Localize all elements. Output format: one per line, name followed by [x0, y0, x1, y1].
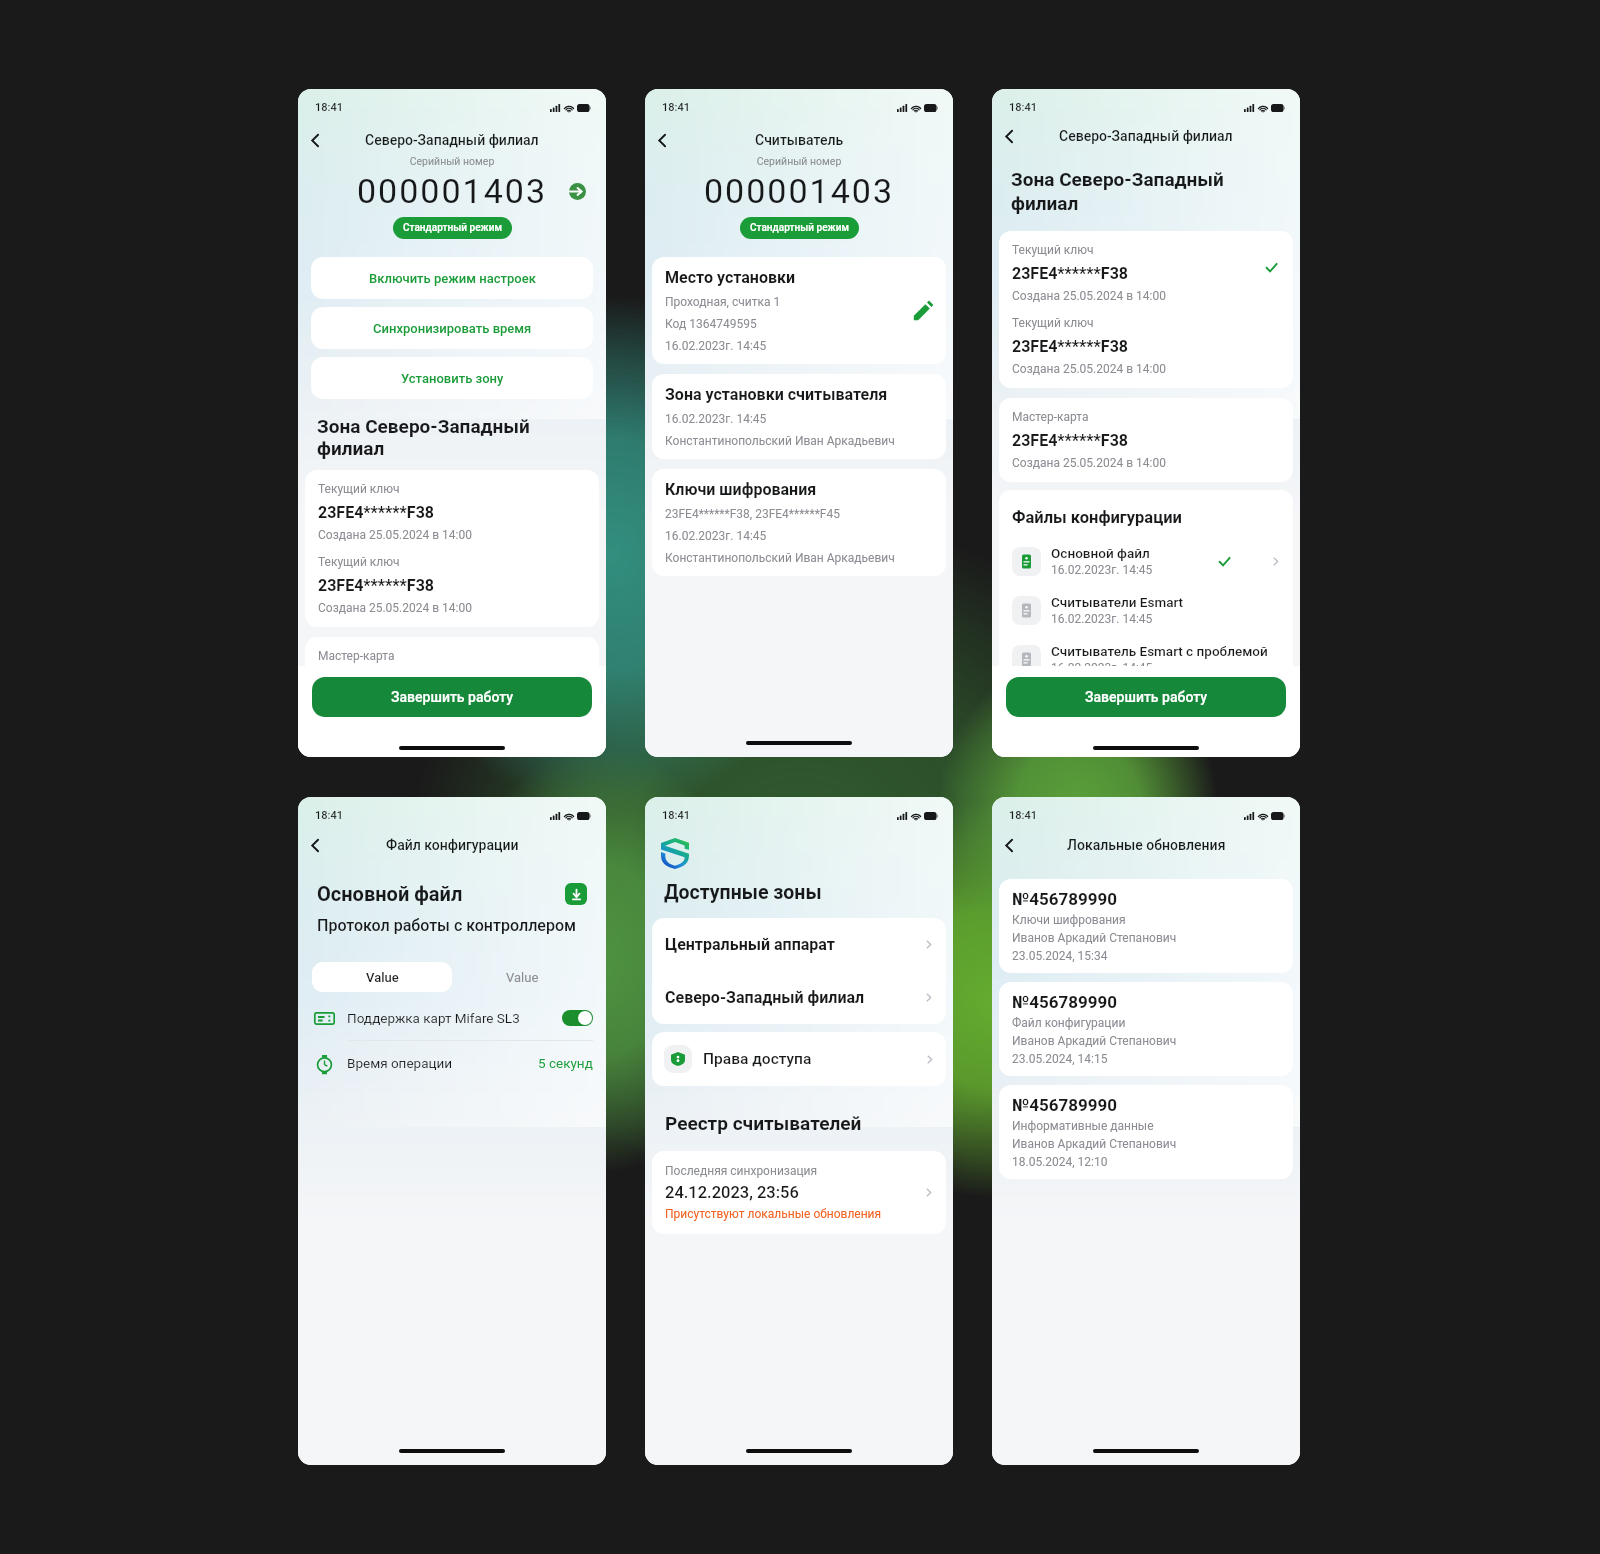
- staticText: 23FE4******F38: [1012, 337, 1128, 356]
- staticText: Мастер-карта: [318, 649, 395, 663]
- staticText: Проходная, считка 1: [665, 295, 781, 309]
- staticText: Доступные зоны: [664, 881, 822, 904]
- button[interactable]: Завершить работу: [1006, 677, 1286, 717]
- button[interactable]: Back: [997, 124, 1021, 148]
- staticText: №456789990: [1012, 1095, 1118, 1115]
- staticText: Синхронизировать время: [373, 321, 532, 336]
- button[interactable]: Value: [452, 962, 593, 992]
- staticText: 16.02.2023г. 14:45: [1051, 612, 1153, 626]
- staticText: Считыватель Esmart с проблемой: [1051, 643, 1268, 659]
- button[interactable]: Место установки: [652, 257, 946, 364]
- staticText: 23FE4******F38: [1012, 264, 1128, 283]
- staticText: Текущий ключ: [318, 482, 400, 496]
- staticText: Серийный номер: [645, 155, 953, 167]
- staticText: Время операции: [347, 1055, 538, 1071]
- staticText: 000001403: [298, 171, 606, 211]
- staticText: 5 секунд: [538, 1055, 593, 1071]
- button[interactable]: Синхронизировать время: [311, 307, 593, 349]
- staticText: Value: [506, 970, 539, 985]
- button[interactable]: Зона установки считывателя: [652, 374, 946, 459]
- staticText: Иванов Аркадий Степанович: [1012, 1034, 1177, 1048]
- staticText: Файл конфигурации: [386, 837, 519, 853]
- staticText: Создана 25.05.2024 в 14:00: [318, 601, 472, 615]
- staticText: Создана 25.05.2024 в 14:00: [318, 695, 472, 709]
- staticText: Зона установки считывателя: [665, 385, 888, 404]
- staticText: 24.12.2023, 23:56: [665, 1183, 799, 1202]
- staticText: 16.02.2023г. 14:45: [665, 412, 767, 426]
- button[interactable]: Последняя синхронизация: [652, 1151, 946, 1234]
- staticText: Северо-Западный филиал: [365, 132, 539, 148]
- staticText: Иванов Аркадий Степанович: [1012, 931, 1177, 945]
- button[interactable]: Мастер-карта: [999, 398, 1293, 482]
- button[interactable]: Северо-Западный филиал: [652, 971, 946, 1024]
- staticText: Value: [366, 970, 399, 985]
- staticText: Считыватель: [755, 132, 844, 148]
- staticText: Создана 25.05.2024 в 14:00: [318, 528, 472, 542]
- button[interactable]: Центральный аппарат: [652, 918, 946, 971]
- button[interactable]: Время операции: [314, 1051, 593, 1075]
- staticText: Стандартный режим: [750, 222, 849, 234]
- button[interactable]: Права доступа: [652, 1032, 946, 1086]
- staticText: Текущий ключ: [1012, 243, 1094, 257]
- button[interactable]: Считыватель Esmart с проблемой: [1012, 643, 1280, 675]
- button[interactable]: Стандартный режим: [740, 217, 859, 239]
- staticText: Код 1364749595: [665, 317, 757, 331]
- staticText: 18:41: [315, 101, 343, 114]
- staticText: Реестр считывателей: [665, 1112, 862, 1134]
- button[interactable]: Download: [565, 883, 587, 905]
- staticText: Файл конфигурации: [1012, 1016, 1126, 1030]
- button[interactable]: Back: [650, 128, 674, 152]
- button[interactable]: №456789990: [999, 1085, 1293, 1179]
- staticText: Включить режим настроек: [369, 271, 536, 286]
- staticText: Основной файл: [317, 882, 565, 905]
- button[interactable]: №456789990: [999, 879, 1293, 973]
- button[interactable]: Завершить работу: [312, 677, 592, 717]
- staticText: Зона Северо-Западный филиал: [1011, 168, 1224, 215]
- button[interactable]: Open: [569, 183, 586, 200]
- staticText: Зона Северо-Западный филиал: [317, 415, 530, 460]
- staticText: Права доступа: [703, 1050, 925, 1068]
- button[interactable]: Edit: [913, 301, 933, 321]
- staticText: Текущий ключ: [318, 555, 400, 569]
- button[interactable]: Считыватели Esmart: [1012, 594, 1280, 626]
- staticText: 18:41: [315, 809, 343, 822]
- button[interactable]: Текущий ключ: [305, 470, 599, 627]
- staticText: 18:41: [1009, 809, 1037, 822]
- staticText: Информативные данные: [1012, 1119, 1154, 1133]
- button[interactable]: Value: [312, 962, 452, 992]
- staticText: 18:41: [662, 101, 690, 114]
- button[interactable]: Back: [303, 833, 327, 857]
- staticText: Константинопольский Иван Аркадьевич: [665, 434, 895, 448]
- staticText: 18.05.2024, 12:10: [1012, 1155, 1108, 1169]
- staticText: №456789990: [1012, 992, 1118, 1012]
- staticText: 18:41: [1009, 101, 1037, 114]
- button[interactable]: Back: [303, 128, 327, 152]
- button[interactable]: Включить режим настроек: [311, 257, 593, 299]
- staticText: 16.02.2023г. 14:45: [665, 529, 767, 543]
- staticText: Мастер-карта: [1012, 410, 1089, 424]
- button[interactable]: Стандартный режим: [393, 217, 512, 239]
- staticText: Протокол работы с контроллером: [317, 916, 577, 935]
- staticText: Иванов Аркадий Степанович: [1012, 1137, 1177, 1151]
- staticText: Считыватели Esmart: [1051, 594, 1184, 610]
- staticText: 16.02.2023г. 14:45: [1051, 563, 1153, 577]
- staticText: Стандартный режим: [403, 222, 502, 234]
- button[interactable]: Back: [997, 833, 1021, 857]
- staticText: Северо-Западный филиал: [1059, 128, 1233, 144]
- staticText: Файлы конфигурации: [1012, 508, 1182, 527]
- button[interactable]: Мастер-карта: [305, 637, 599, 721]
- button[interactable]: Поддержка карт Mifare SL3: [314, 1006, 593, 1030]
- button[interactable]: №456789990: [999, 982, 1293, 1076]
- staticText: 000001403: [645, 171, 953, 211]
- staticText: 23.05.2024, 15:34: [1012, 949, 1108, 963]
- staticText: Создана 25.05.2024 в 14:00: [1012, 362, 1166, 376]
- staticText: 23.05.2024, 14:15: [1012, 1052, 1108, 1066]
- staticText: 16.02.2023г. 14:45: [665, 339, 767, 353]
- staticText: 16.02.2023г. 14:45: [1051, 661, 1153, 675]
- staticText: Завершить работу: [391, 689, 513, 705]
- button[interactable]: Ключи шифрования: [652, 469, 946, 576]
- button[interactable]: Текущий ключ: [999, 231, 1293, 388]
- button[interactable]: Установить зону: [311, 357, 593, 399]
- button[interactable]: Основной файл: [1012, 545, 1280, 577]
- staticText: Локальные обновления: [1067, 837, 1226, 853]
